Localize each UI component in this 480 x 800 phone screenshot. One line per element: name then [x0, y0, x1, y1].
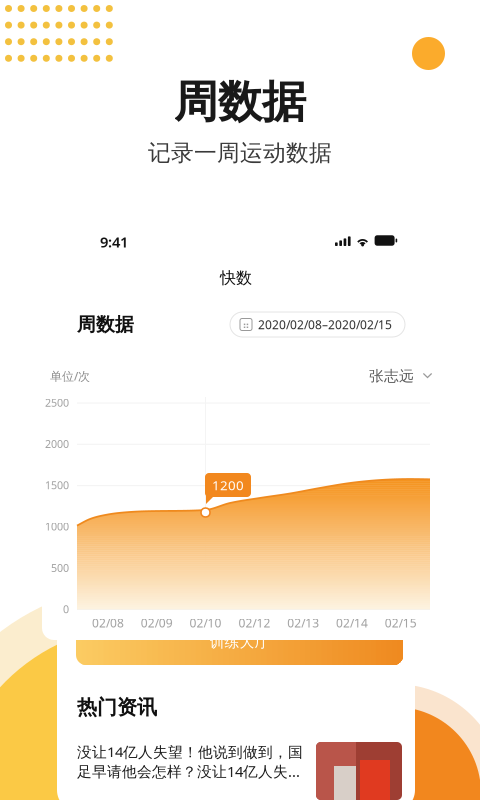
staticText: 热门资讯 — [77, 695, 157, 720]
staticText: 2020/02/08–2020/02/15 — [258, 316, 392, 332]
staticText: 1000 — [45, 519, 69, 534]
staticText: 02/14 — [336, 615, 368, 631]
staticText: 9:41 — [100, 232, 128, 251]
staticText: 没让14亿人失望！他说到做到，国足早请他会怎样？没让14亿人失... — [77, 742, 303, 781]
staticText: 02/09 — [141, 615, 173, 631]
staticText: 1500 — [45, 478, 69, 492]
staticText: 张志远 — [369, 367, 414, 385]
staticText: 0 — [63, 602, 69, 616]
button[interactable]: 没让14亿人失望！他说到做到，国足早请他会怎样？没让14亿人失... — [77, 742, 397, 800]
staticText: 训练大厅 — [209, 633, 269, 651]
staticText: 2000 — [45, 437, 69, 451]
staticText: 500 — [51, 561, 69, 575]
staticText: 02/15 — [385, 615, 417, 631]
staticText: 02/13 — [287, 615, 319, 631]
staticText: 快数 — [220, 268, 252, 288]
button[interactable]: 2020/02/08–2020/02/15 — [230, 312, 405, 337]
button[interactable]: 训练大厅 — [76, 619, 403, 665]
staticText: 2500 — [45, 395, 69, 410]
staticText: 02/08 — [92, 615, 124, 631]
staticText: 记录一周运动数据 — [148, 139, 332, 167]
staticText: 1200 — [212, 476, 244, 494]
staticText: 周数据 — [174, 75, 306, 129]
staticText: 02/10 — [190, 615, 222, 631]
staticText: 周数据 — [77, 313, 134, 336]
button[interactable]: 张志远 — [369, 367, 433, 385]
staticText: 单位/次 — [50, 368, 90, 384]
staticText: 02/12 — [238, 615, 270, 631]
